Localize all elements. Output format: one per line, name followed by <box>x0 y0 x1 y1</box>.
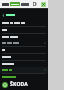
button[interactable]: Skoda home <box>2 81 46 88</box>
button[interactable] <box>0 54 48 60</box>
button[interactable] <box>0 34 48 40</box>
button[interactable] <box>0 12 48 18</box>
button[interactable]: Compare <box>32 1 38 7</box>
button[interactable] <box>0 27 48 33</box>
staticText: ŠKODA <box>10 81 28 88</box>
button[interactable] <box>0 61 48 67</box>
button[interactable]: Skoda <box>10 2 20 6</box>
button[interactable]: Brand <box>2 3 9 6</box>
button[interactable]: Close menu <box>40 1 46 7</box>
button[interactable] <box>0 40 48 46</box>
button[interactable] <box>0 20 48 26</box>
button[interactable]: Section <box>21 3 29 6</box>
button[interactable] <box>0 47 48 53</box>
button[interactable] <box>0 67 48 73</box>
